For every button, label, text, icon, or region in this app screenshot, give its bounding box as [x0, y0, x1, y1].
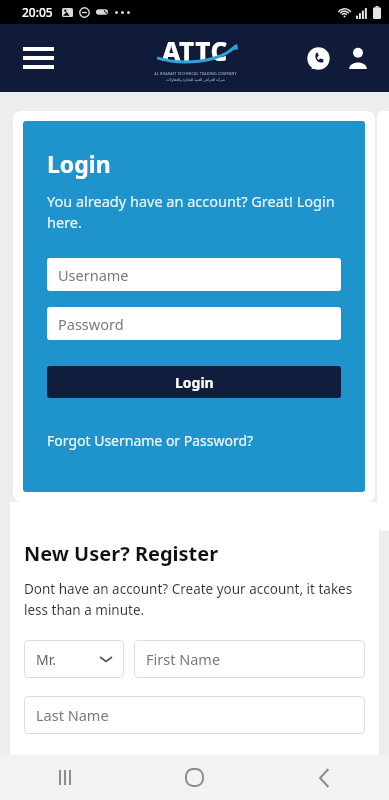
- staticText: AL KHARAFI TECHNICAL TRADING COMPANY: [154, 71, 237, 76]
- staticText: You already have an account? Great! Logi…: [47, 191, 341, 233]
- button[interactable]: Password: [47, 307, 341, 340]
- button[interactable]: Forgot Username or Password?: [47, 431, 254, 450]
- staticText: Username: [58, 265, 129, 285]
- staticText: Dont have an account? Create your accoun…: [24, 580, 365, 619]
- staticText: 20:05: [22, 4, 53, 20]
- staticText: شركة الخرافي الفنية للتجارة والمقاولات: [166, 77, 225, 82]
- staticText: Last Name: [36, 705, 109, 725]
- button[interactable]: Contact us on WhatsApp: [301, 41, 335, 75]
- button[interactable]: First Name: [134, 640, 365, 678]
- staticText: Mr.: [36, 650, 56, 669]
- staticText: ATTC: [162, 33, 228, 68]
- staticText: Login: [175, 373, 214, 392]
- button[interactable]: Back: [259, 755, 389, 800]
- button[interactable]: Login: [47, 366, 341, 398]
- button[interactable]: My account: [341, 41, 375, 75]
- button[interactable]: Recent apps: [0, 755, 129, 800]
- staticText: Login: [47, 148, 111, 179]
- staticText: Password: [58, 314, 124, 334]
- button[interactable]: Last Name: [24, 696, 365, 734]
- button[interactable]: Home: [129, 755, 259, 800]
- button[interactable]: Username: [47, 258, 341, 291]
- button[interactable]: Mr.: [24, 640, 124, 678]
- staticText: New User? Register: [24, 540, 219, 567]
- staticText: First Name: [146, 649, 221, 669]
- button[interactable]: Open navigation menu: [20, 40, 56, 76]
- staticText: Forgot Username or Password?: [47, 431, 254, 450]
